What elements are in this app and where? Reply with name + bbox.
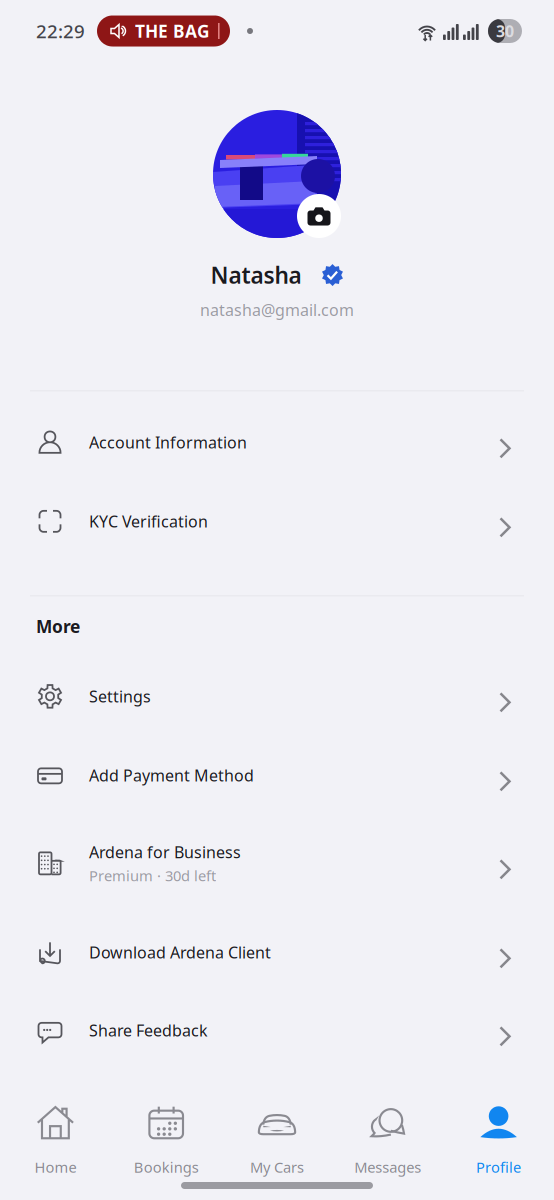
staticText: Ardena for Business xyxy=(89,841,241,863)
button[interactable]: Settings xyxy=(0,656,554,736)
staticText: Bookings xyxy=(134,1157,199,1177)
staticText: Home xyxy=(34,1157,76,1177)
button[interactable]: Ardena for Business xyxy=(0,814,554,912)
staticText: Natasha xyxy=(210,260,301,290)
button[interactable]: Add Payment Method xyxy=(0,736,554,814)
button[interactable]: Bookings xyxy=(111,1101,222,1180)
button[interactable]: My Cars xyxy=(222,1101,332,1180)
staticText: 30 xyxy=(496,20,514,42)
staticText: Download Ardena Client xyxy=(89,942,271,963)
button[interactable]: Profile xyxy=(443,1101,554,1180)
button[interactable]: Share Feedback xyxy=(0,992,554,1068)
staticText: Profile xyxy=(476,1157,521,1177)
button[interactable]: Messages xyxy=(332,1101,443,1180)
staticText: THE BAG xyxy=(135,19,210,42)
staticText: Add Payment Method xyxy=(89,765,254,786)
staticText: 22:29 xyxy=(36,19,85,43)
staticText: Share Feedback xyxy=(89,1020,208,1041)
button[interactable]: KYC Verification xyxy=(0,481,554,561)
staticText: KYC Verification xyxy=(89,511,208,532)
staticText: Settings xyxy=(89,686,151,707)
staticText: Premium · 30d left xyxy=(89,866,216,885)
button[interactable]: Change profile photo xyxy=(297,194,341,238)
button[interactable]: Home xyxy=(0,1101,111,1180)
staticText: Messages xyxy=(354,1157,421,1177)
staticText: My Cars xyxy=(250,1157,304,1177)
button[interactable]: Download Ardena Client xyxy=(0,912,554,992)
staticText: natasha@gmail.com xyxy=(200,299,354,320)
staticText: Account Information xyxy=(89,432,247,453)
staticText: More xyxy=(36,615,80,638)
button[interactable]: Account Information xyxy=(0,403,554,481)
